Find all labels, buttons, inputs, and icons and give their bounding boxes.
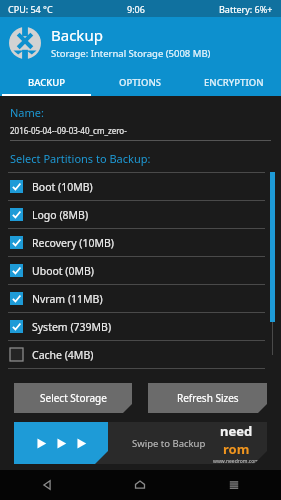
button[interactable]: 2016-05-04--09-03-40_cm_zero-userdebug_5… — [10, 125, 271, 136]
staticText: rom — [223, 440, 250, 458]
staticText: BACKUP — [28, 76, 66, 89]
button[interactable]: Recovery (10MB) — [0, 229, 281, 256]
button[interactable]: Boot (10MB) — [0, 173, 281, 200]
staticText: Logo (8MB) — [32, 208, 89, 222]
staticText: Select Storage — [40, 391, 107, 405]
staticText: System (739MB) — [32, 320, 112, 334]
button[interactable]: ENCRYPTION — [187, 68, 281, 96]
staticText: 9:06 — [127, 3, 145, 15]
button[interactable]: Refresh Sizes — [148, 383, 267, 413]
staticText: Battery: 6%+ — [219, 3, 273, 15]
staticText: Boot (10MB) — [32, 180, 93, 194]
staticText: Refresh Sizes — [177, 391, 239, 405]
button[interactable]: Nvram (11MB) — [0, 285, 281, 312]
staticText: need — [220, 422, 253, 440]
staticText: Storage: Internal Storage (5008 MB) — [51, 47, 211, 60]
button[interactable]: Recent apps — [187, 470, 281, 500]
staticText: Select Partitions to Backup: — [10, 151, 151, 166]
button[interactable]: Cache (4MB) — [0, 341, 281, 368]
staticText: Backup — [51, 25, 103, 45]
staticText: Cache (4MB) — [32, 348, 94, 362]
button[interactable]: System (739MB) — [0, 313, 281, 340]
button[interactable]: BACKUP — [0, 68, 93, 96]
staticText: ENCRYPTION — [204, 76, 264, 89]
button[interactable]: Swipe to Backup — [14, 422, 267, 464]
staticText: Nvram (11MB) — [32, 292, 103, 306]
staticText: Uboot (0MB) — [32, 264, 95, 278]
staticText: OPTIONS — [119, 76, 161, 89]
staticText: Recovery (10MB) — [32, 236, 114, 250]
staticText: 2016-05-04--09-03-40_cm_zero-userdebug_5… — [10, 125, 271, 136]
button[interactable]: Select Storage — [14, 383, 132, 413]
button[interactable]: Back — [0, 470, 93, 500]
button[interactable]: OPTIONS — [93, 68, 187, 96]
button[interactable]: Uboot (0MB) — [0, 257, 281, 284]
button[interactable]: Logo (8MB) — [0, 201, 281, 228]
staticText: Name: — [10, 105, 44, 120]
staticText: CPU: 54 °C — [8, 3, 53, 15]
staticText: Swipe to Backup — [132, 437, 206, 450]
button[interactable]: Home — [93, 470, 187, 500]
staticText: www.needrom.com — [213, 458, 259, 464]
